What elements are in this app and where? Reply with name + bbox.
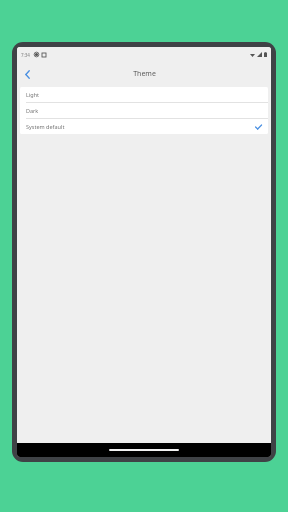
- staticText: Theme: [133, 69, 156, 79]
- staticText: Light: [26, 91, 40, 98]
- staticText: Dark: [26, 107, 39, 114]
- button[interactable]: Dark: [20, 103, 268, 118]
- staticText: 7:34: [21, 52, 30, 58]
- staticText: System default: [26, 123, 65, 130]
- button[interactable]: Light: [20, 87, 268, 102]
- button[interactable]: Back: [17, 64, 37, 84]
- button[interactable]: System default: [20, 119, 268, 134]
